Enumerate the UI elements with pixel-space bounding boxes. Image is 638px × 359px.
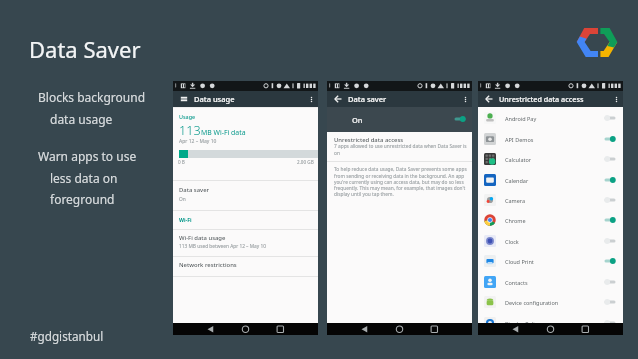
button[interactable]: Back bbox=[327, 91, 348, 107]
button[interactable]: API Demos bbox=[478, 129, 623, 149]
staticText: Chrome bbox=[505, 217, 526, 224]
staticText: Calculator bbox=[505, 156, 532, 163]
staticText: Data saver bbox=[348, 94, 387, 104]
staticText: To help reduce data usage, Data Saver pr… bbox=[334, 166, 467, 197]
staticText: #gdgistanbul bbox=[30, 328, 104, 344]
staticText: Android Pay bbox=[505, 115, 537, 122]
button[interactable]: More options bbox=[609, 91, 623, 107]
staticText: less data on bbox=[50, 170, 118, 186]
staticText: Usage bbox=[179, 113, 196, 120]
staticText: Unrestricted data access bbox=[499, 94, 584, 104]
button[interactable] bbox=[327, 108, 472, 127]
staticText: 2.00 GB bbox=[297, 159, 314, 165]
button[interactable] bbox=[327, 132, 472, 160]
staticText: foreground bbox=[50, 191, 115, 207]
staticText: Contacts bbox=[505, 279, 528, 286]
staticText: MB Wi-Fi data bbox=[201, 128, 246, 137]
button[interactable]: Chrome bbox=[478, 210, 623, 230]
staticText: 113 bbox=[179, 122, 201, 139]
staticText: Cloud Print bbox=[505, 258, 534, 265]
staticText: Clock bbox=[505, 238, 519, 245]
staticText: 113 MB used between Apr 12 – May 10 bbox=[179, 243, 266, 250]
button[interactable] bbox=[173, 229, 318, 255]
staticText: Data usage bbox=[194, 94, 235, 104]
button[interactable]: Open navigation menu bbox=[173, 91, 194, 107]
button[interactable]: Calculator bbox=[478, 149, 623, 169]
button[interactable]: Calendar bbox=[478, 170, 623, 190]
staticText: Blocks background bbox=[38, 89, 146, 105]
staticText: data usage bbox=[50, 111, 113, 127]
staticText: 0 B bbox=[178, 159, 185, 165]
button[interactable]: More options bbox=[304, 91, 318, 107]
staticText: Data Saver bbox=[29, 34, 141, 64]
staticText: Camera bbox=[505, 197, 526, 204]
staticText: Calendar bbox=[505, 177, 529, 184]
staticText: Data saver bbox=[179, 186, 210, 194]
staticText: Display Policy bbox=[505, 320, 541, 327]
staticText: On bbox=[352, 115, 363, 125]
button[interactable] bbox=[173, 256, 318, 276]
staticText: Wi-Fi bbox=[179, 216, 192, 223]
button[interactable]: More options bbox=[458, 91, 472, 107]
button[interactable]: Cloud Print bbox=[478, 251, 623, 271]
button[interactable]: Contacts bbox=[478, 272, 623, 292]
staticText: Wi-Fi data usage bbox=[179, 234, 226, 242]
button[interactable]: Android Pay bbox=[478, 108, 623, 128]
staticText: Warn apps to use bbox=[38, 148, 137, 164]
staticText: API Demos bbox=[505, 136, 534, 143]
staticText: Apr 12 – May 10 bbox=[179, 138, 217, 145]
button[interactable]: Display Policy bbox=[478, 313, 623, 333]
button[interactable]: Camera bbox=[478, 190, 623, 210]
button[interactable]: Back bbox=[478, 91, 499, 107]
staticText: Network restrictions bbox=[179, 261, 237, 269]
button[interactable] bbox=[173, 180, 318, 210]
button[interactable]: Device configuration bbox=[478, 292, 623, 312]
staticText: 7 apps allowed to use unrestricted data … bbox=[334, 143, 467, 157]
staticText: Unrestricted data access bbox=[334, 136, 404, 144]
staticText: Device configuration bbox=[505, 299, 559, 306]
staticText: On bbox=[179, 196, 186, 203]
button[interactable]: Clock bbox=[478, 231, 623, 251]
